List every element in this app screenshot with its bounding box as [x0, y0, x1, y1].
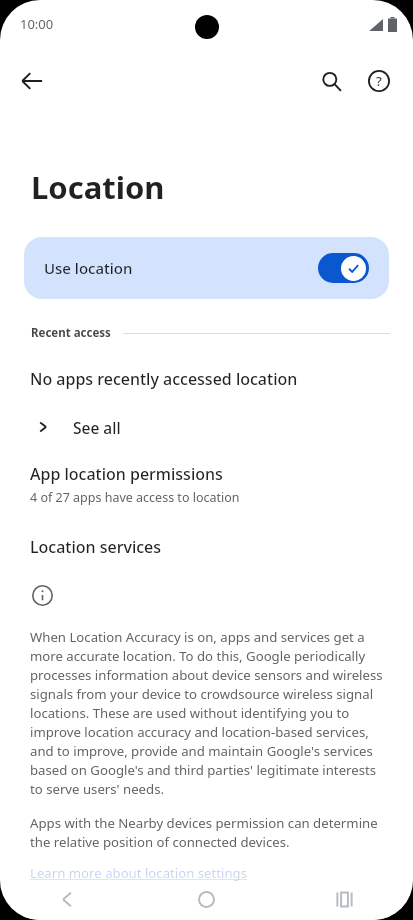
button[interactable]: App location permissions [0, 463, 413, 506]
staticText: ? [376, 72, 382, 90]
staticText: 4 of 27 apps have access to location [30, 489, 240, 506]
staticText: When Location Accuracy is on, apps and s… [30, 628, 387, 797]
button[interactable]: Use location [24, 237, 389, 299]
button[interactable]: Back [0, 878, 137, 920]
button[interactable]: Learn more about location settings [0, 864, 274, 882]
staticText: Apps with the Nearby devices permission … [30, 814, 387, 850]
staticText: 10:00 [20, 15, 54, 33]
button[interactable]: Help [355, 57, 403, 105]
staticText: No apps recently accessed location [30, 368, 298, 390]
button[interactable]: See all [0, 407, 413, 447]
button[interactable]: Home [137, 878, 275, 920]
button[interactable]: Location services [0, 536, 413, 558]
staticText: Location [31, 166, 165, 208]
other: Information [32, 585, 53, 606]
staticText: See all [73, 417, 121, 438]
staticText: App location permissions [30, 463, 223, 485]
button[interactable]: Back [8, 57, 56, 105]
button[interactable]: Recent apps [275, 878, 413, 920]
staticText: Recent access [31, 325, 111, 341]
staticText: Use location [44, 258, 133, 278]
button[interactable]: Search [307, 57, 355, 105]
